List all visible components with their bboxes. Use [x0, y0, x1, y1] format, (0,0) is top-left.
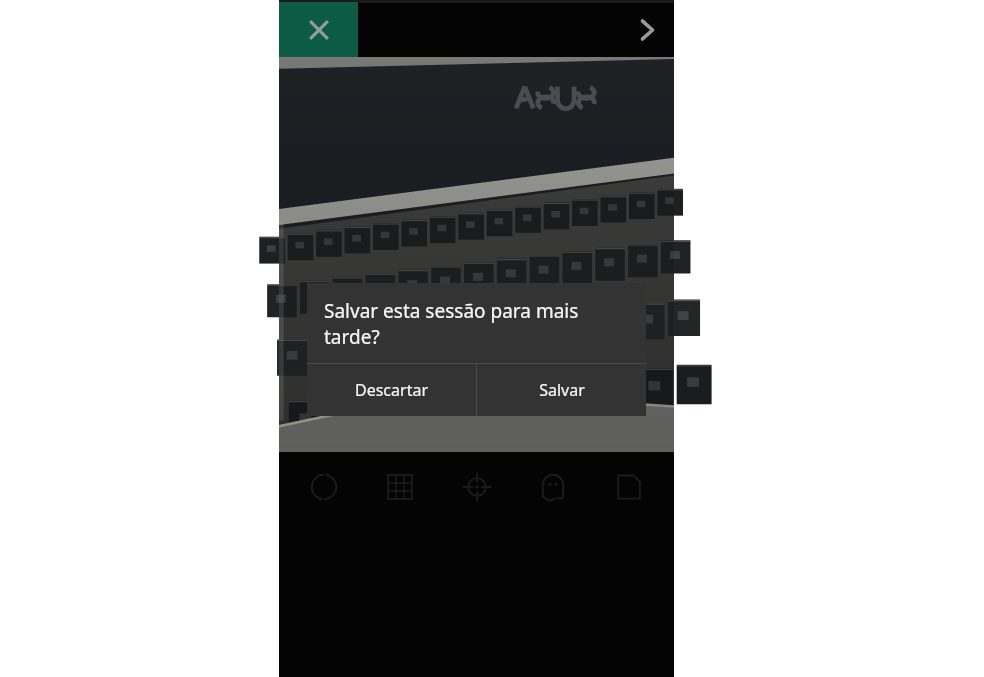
button[interactable]: Sincronizar	[293, 456, 355, 518]
staticText: Salvar	[539, 379, 585, 401]
button[interactable]: Salvar	[477, 364, 646, 416]
button[interactable]: Avançar	[619, 2, 674, 57]
button[interactable]: Fantasma	[522, 456, 584, 518]
button[interactable]: Foco	[446, 456, 508, 518]
button[interactable]: Descartar	[307, 364, 476, 416]
button[interactable]: Grade	[369, 456, 431, 518]
button[interactable]: Página	[598, 456, 660, 518]
staticText: Salvar esta sessão para mais tarde?	[324, 298, 629, 349]
staticText: Descartar	[355, 379, 428, 401]
button[interactable]: Fechar	[279, 2, 358, 57]
